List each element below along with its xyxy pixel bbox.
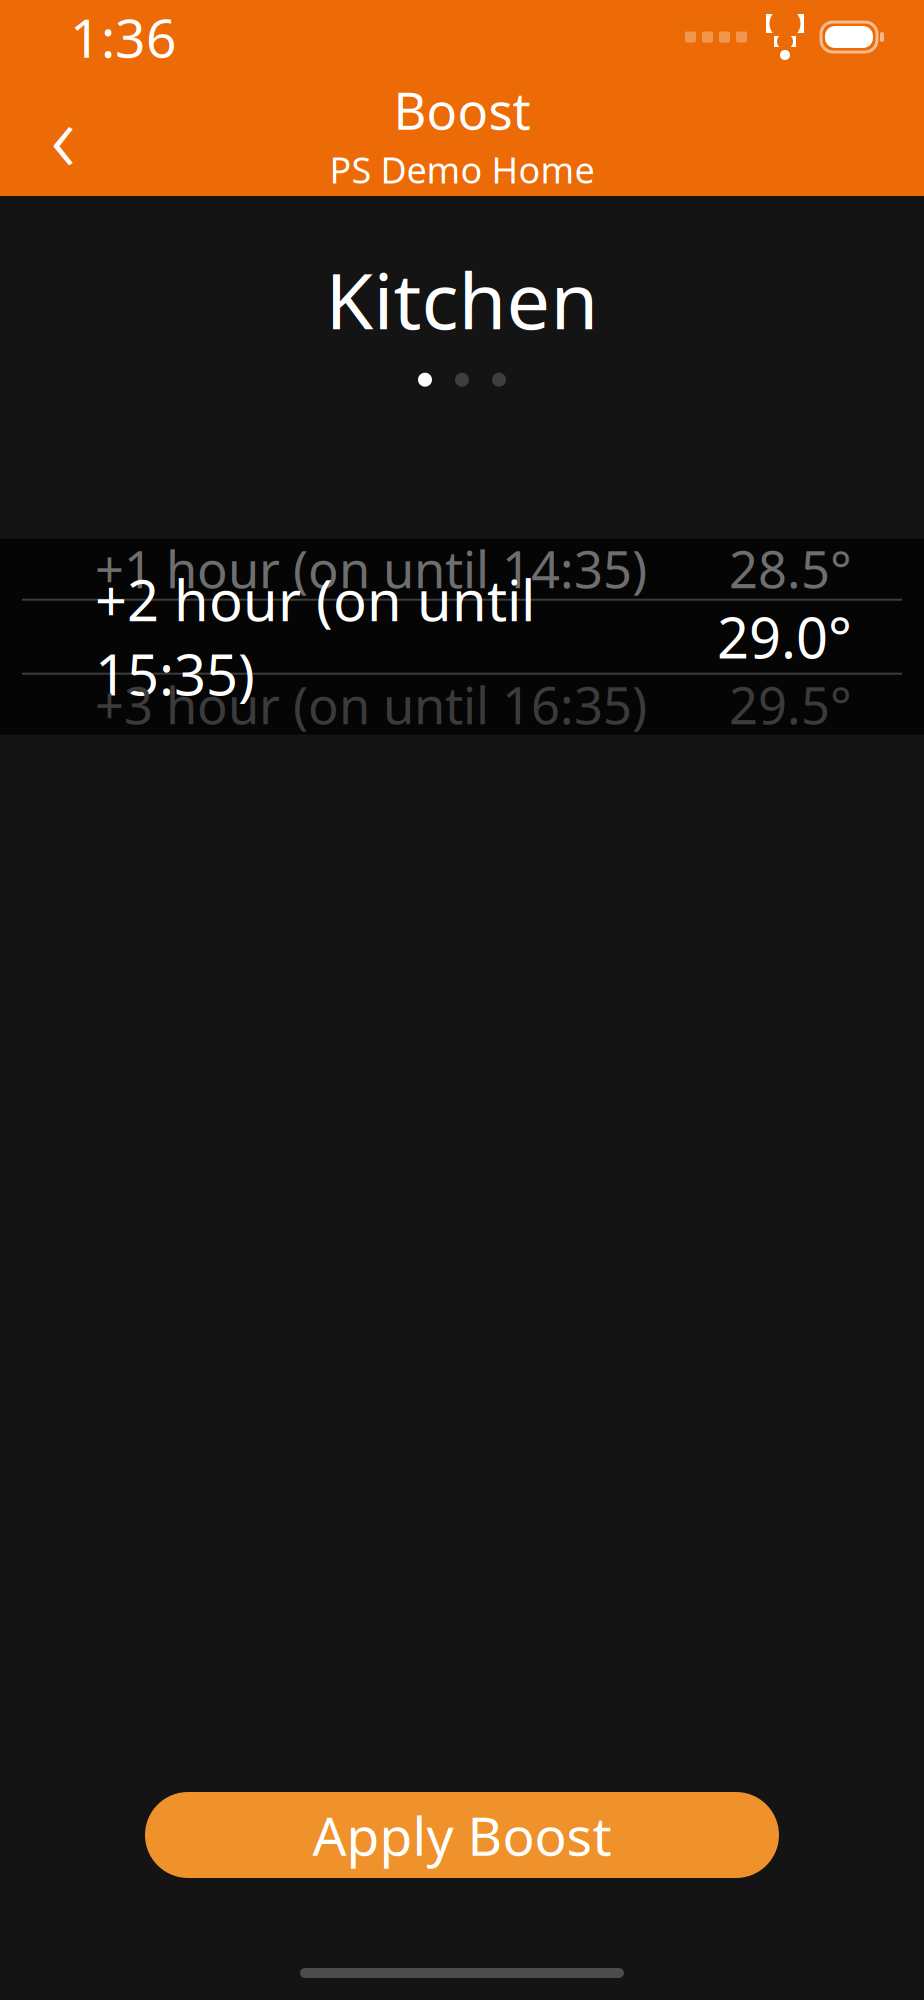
staticText: Kitchen bbox=[325, 248, 598, 351]
staticText: +2 hour (on until 15:35) bbox=[95, 562, 535, 711]
staticText: ° bbox=[830, 671, 852, 738]
button[interactable]: Apply Boost bbox=[145, 1792, 779, 1878]
staticText: 1:36 bbox=[70, 2, 177, 72]
staticText: ° bbox=[830, 535, 852, 602]
staticText: 28.5 bbox=[729, 535, 830, 602]
staticText: +3 hour (on until 16:35) bbox=[95, 671, 647, 738]
staticText: +1 hour (on until 14:35) bbox=[95, 535, 647, 602]
staticText: 29.5 bbox=[729, 671, 830, 738]
staticText: Boost bbox=[393, 76, 530, 144]
button[interactable]: Back bbox=[18, 90, 108, 180]
staticText: 29.0 bbox=[717, 599, 828, 674]
staticText: ‹ bbox=[50, 71, 75, 199]
staticText: ° bbox=[828, 599, 852, 674]
staticText: PS Demo Home bbox=[329, 146, 594, 193]
staticText: Apply Boost bbox=[312, 1800, 611, 1870]
